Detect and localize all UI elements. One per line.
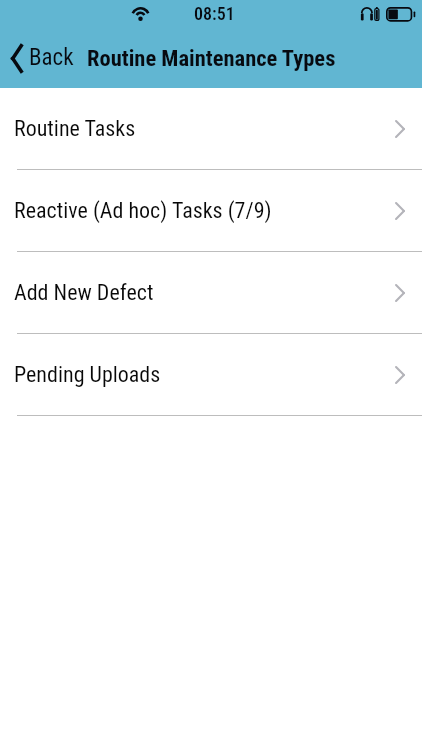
- staticText: Back: [29, 44, 74, 71]
- staticText: Add New Defect: [14, 280, 154, 306]
- staticText: Pending Uploads: [14, 362, 161, 388]
- other: Battery: [386, 7, 416, 22]
- staticText: Reactive (Ad hoc) Tasks (7/9): [14, 198, 272, 224]
- other: Wi-Fi: [132, 7, 149, 21]
- button[interactable]: Back: [0, 43, 82, 72]
- button[interactable]: Reactive (Ad hoc) Tasks (7/9): [0, 170, 422, 252]
- button[interactable]: Pending Uploads: [0, 334, 422, 416]
- staticText: Routine Maintenance Types: [87, 45, 336, 71]
- other: Headset connected: [360, 7, 380, 21]
- button[interactable]: Routine Tasks: [0, 88, 422, 170]
- button[interactable]: Add New Defect: [0, 252, 422, 334]
- staticText: 08:51: [194, 3, 235, 24]
- staticText: Routine Tasks: [14, 116, 136, 142]
